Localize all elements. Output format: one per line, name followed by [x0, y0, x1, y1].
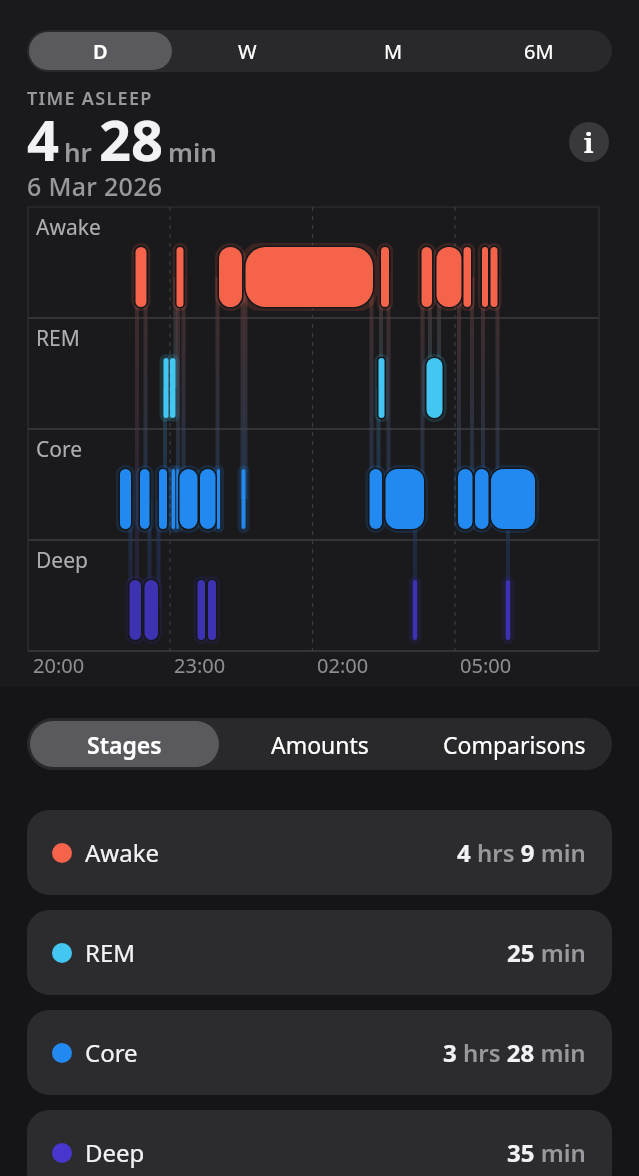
button[interactable]: Awake [27, 810, 612, 895]
button[interactable]: Stages [30, 721, 219, 767]
staticText: Core [85, 1036, 138, 1069]
staticText: 20:00 [33, 652, 85, 679]
staticText: 6M [524, 38, 554, 65]
button[interactable]: D [29, 32, 172, 70]
staticText: Core [36, 435, 83, 464]
staticText: 3 hrs 28 min [443, 1036, 586, 1069]
staticText: 35 min [507, 1136, 586, 1169]
staticText: Comparisons [443, 729, 586, 760]
button[interactable]: M [322, 32, 464, 70]
staticText: REM [85, 936, 136, 969]
button[interactable]: Deep [27, 1110, 612, 1176]
button[interactable]: W [176, 32, 318, 70]
button[interactable]: 6M [468, 32, 610, 70]
button[interactable]: Amounts [225, 721, 414, 767]
staticText: Deep [36, 546, 88, 575]
staticText: Deep [85, 1136, 145, 1169]
staticText: hr [64, 134, 92, 169]
staticText: Awake [85, 836, 160, 869]
staticText: Stages [87, 729, 162, 760]
staticText: 05:00 [460, 652, 512, 679]
staticText: TIME ASLEEP [27, 86, 153, 111]
button[interactable]: REM [27, 910, 612, 995]
staticText: 4 [27, 101, 60, 177]
staticText: 25 min [507, 936, 586, 969]
staticText: W [238, 38, 257, 65]
button[interactable]: Comparisons [420, 721, 609, 767]
staticText: Amounts [271, 729, 369, 760]
staticText: M [384, 38, 403, 65]
staticText: 23:00 [174, 652, 226, 679]
staticText: min [168, 134, 217, 169]
staticText: Awake [36, 213, 101, 242]
button[interactable]: Core [27, 1010, 612, 1095]
staticText: 6 Mar 2026 [27, 169, 163, 203]
staticText: REM [36, 324, 80, 353]
staticText: 02:00 [317, 652, 369, 679]
staticText: 28 [99, 101, 164, 177]
staticText: 4 hrs 9 min [457, 836, 586, 869]
button[interactable]: i [569, 122, 609, 162]
staticText: i [584, 124, 594, 161]
staticText: D [93, 38, 108, 65]
